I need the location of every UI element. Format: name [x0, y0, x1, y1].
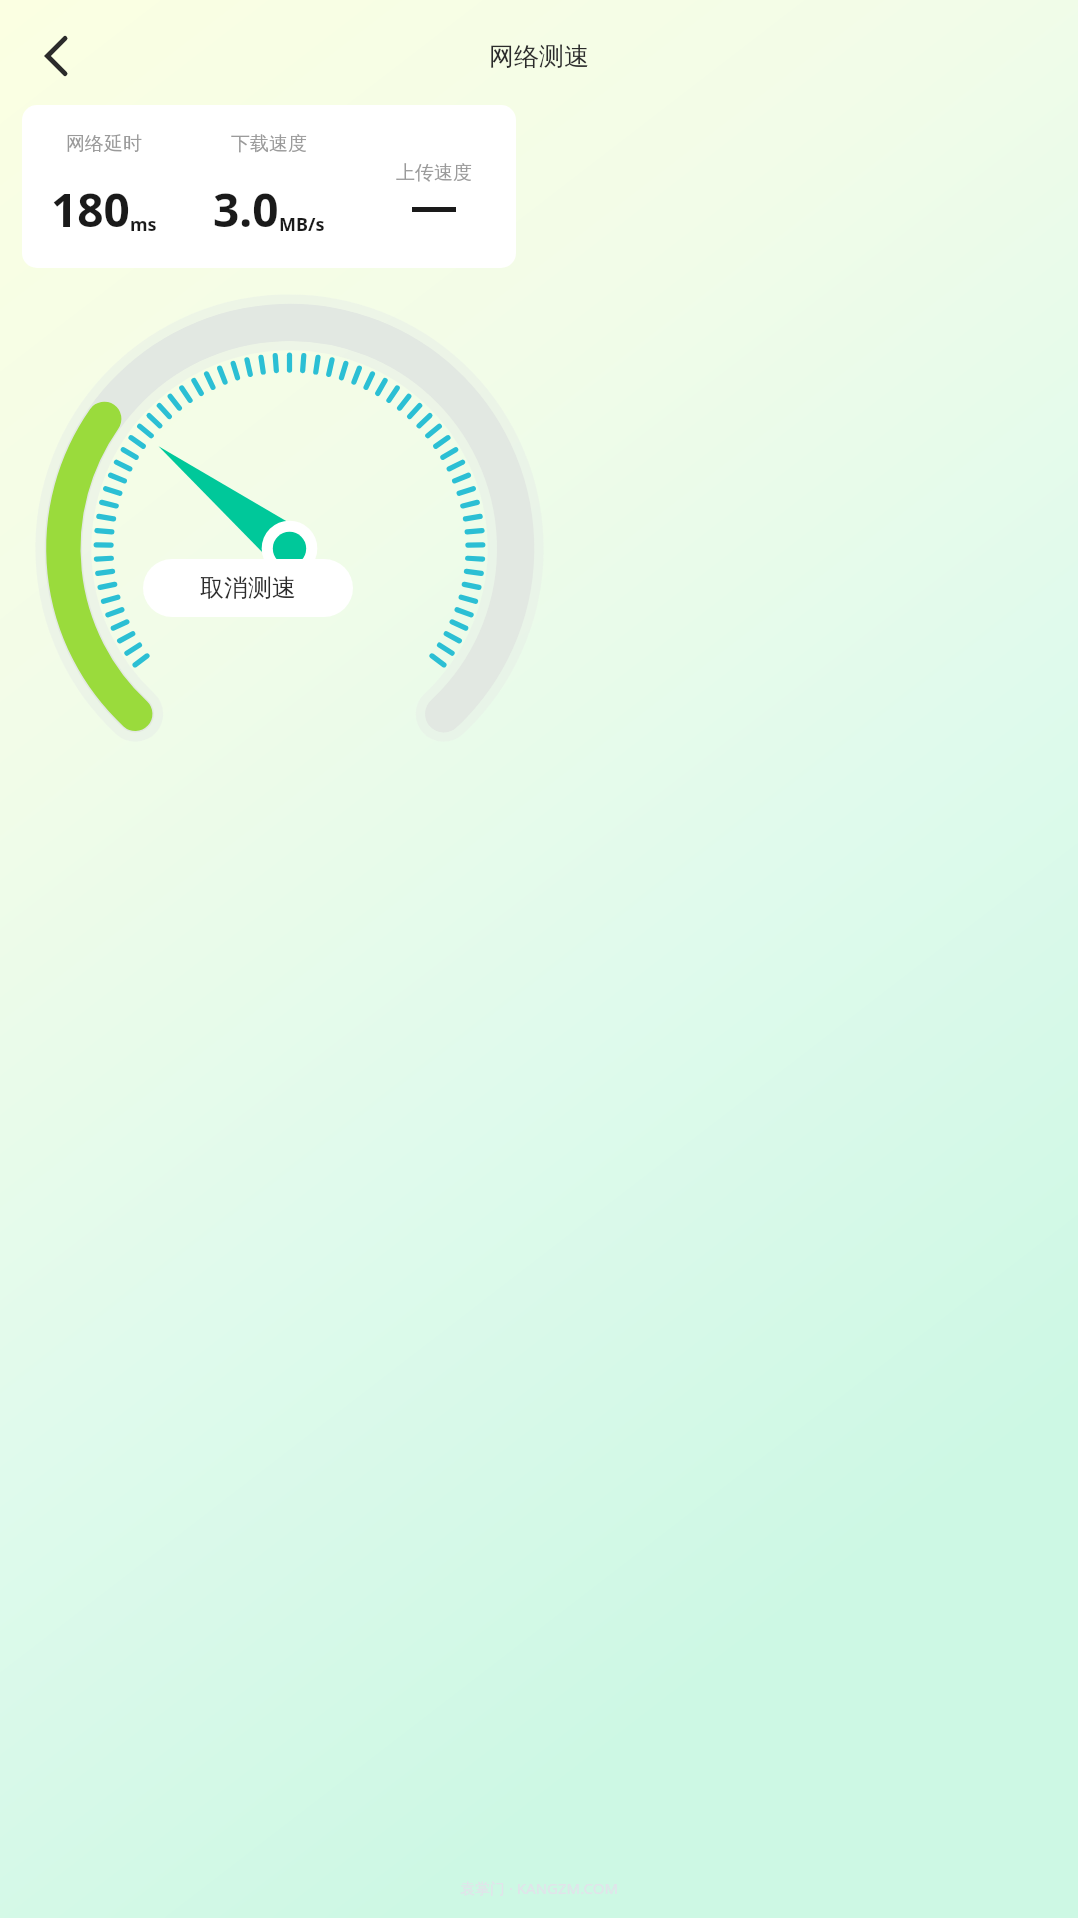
- staticText: 袁掌门 · KANGZM.COM: [460, 1878, 618, 1898]
- staticText: 下载速度: [231, 132, 307, 156]
- button[interactable]: Back: [18, 16, 98, 96]
- staticText: 网络延时: [66, 132, 142, 156]
- staticText: MB/s: [279, 212, 325, 237]
- staticText: ms: [130, 212, 157, 237]
- staticText: 180: [51, 178, 130, 241]
- staticText: 网络测速: [489, 41, 589, 72]
- button[interactable]: 取消测速: [143, 559, 353, 617]
- staticText: 取消测速: [200, 573, 296, 603]
- staticText: 上传速度: [396, 161, 472, 185]
- staticText: 3.0: [213, 178, 279, 241]
